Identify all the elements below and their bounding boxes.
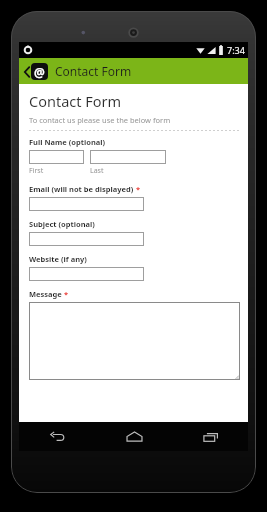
staticText: Subject (optional) — [29, 219, 95, 229]
staticText: Last — [90, 166, 104, 176]
staticText: Message — [29, 289, 62, 299]
staticText: Website (if any) — [29, 254, 87, 264]
staticText: * — [64, 289, 69, 299]
staticText: 7:34 — [227, 44, 245, 56]
staticText: To contact us please use the below form — [29, 115, 171, 125]
button[interactable]: Home — [96, 422, 172, 451]
button[interactable] — [29, 302, 240, 380]
button[interactable] — [90, 150, 166, 164]
staticText: First — [29, 166, 44, 176]
staticText: Full Name (optional) — [29, 137, 106, 147]
staticText: Contact Form — [29, 91, 122, 111]
button[interactable] — [29, 232, 144, 246]
button[interactable] — [29, 150, 84, 164]
button[interactable]: Back — [19, 422, 96, 451]
button[interactable] — [29, 267, 144, 281]
button[interactable] — [29, 197, 144, 211]
button[interactable]: Recent apps — [172, 422, 248, 451]
staticText: Email (will not be displayed) — [29, 184, 134, 194]
staticText: @ — [34, 64, 45, 80]
staticText: Contact Form — [55, 63, 132, 79]
staticText: * — [136, 184, 141, 194]
button[interactable]: Navigate up — [22, 61, 50, 82]
